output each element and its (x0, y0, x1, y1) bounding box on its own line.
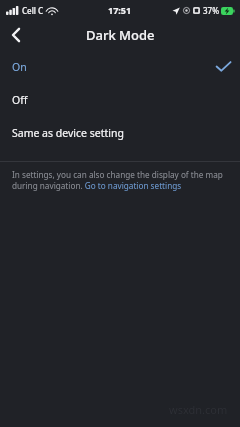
staticText: 17:51 (108, 4, 132, 16)
button[interactable]: Same as device setting (0, 116, 240, 149)
button[interactable]: Off (0, 83, 240, 116)
button[interactable]: In settings, you can also change the dis… (0, 162, 240, 199)
button[interactable]: On (0, 50, 240, 83)
staticText: In settings, you can also change the dis… (12, 169, 228, 191)
staticText: wsxdn.com (169, 402, 228, 417)
staticText: Off (12, 93, 28, 107)
staticText: Same as device setting (12, 126, 124, 140)
staticText: On (12, 60, 27, 74)
button[interactable]: Back (0, 20, 32, 50)
staticText: Cell C (22, 5, 44, 16)
staticText: 37% (203, 5, 219, 16)
staticText: Dark Mode (86, 26, 155, 44)
